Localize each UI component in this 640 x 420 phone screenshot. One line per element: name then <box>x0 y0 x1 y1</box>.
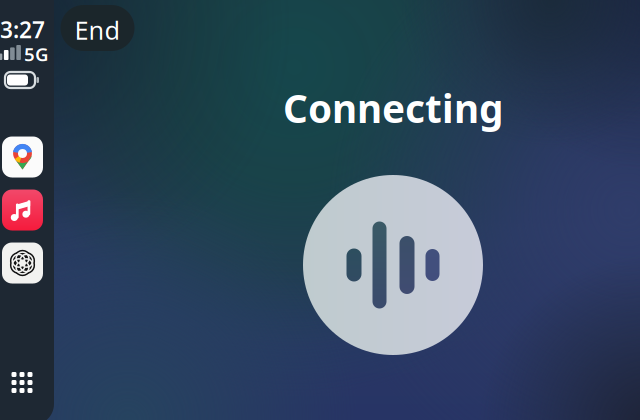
staticText: 3:27 <box>0 14 45 44</box>
button[interactable]: Maps <box>2 136 43 177</box>
staticText: 5G <box>24 42 49 66</box>
button[interactable]: App Library <box>2 362 42 402</box>
button[interactable]: End <box>60 5 134 51</box>
button[interactable]: ChatGPT <box>2 242 43 283</box>
staticText: Connecting <box>283 82 503 134</box>
button[interactable]: Music <box>2 189 43 230</box>
staticText: End <box>74 13 120 47</box>
